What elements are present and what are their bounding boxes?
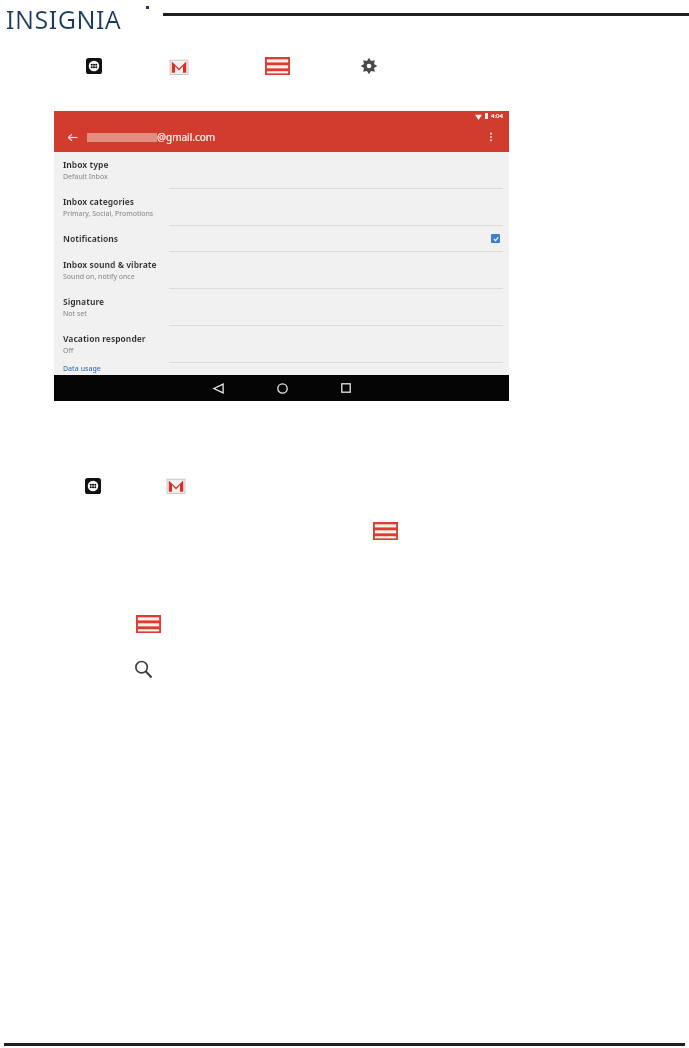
- staticText: Notifications: [63, 233, 119, 245]
- button[interactable]: Back: [201, 375, 235, 401]
- staticText: Not set: [63, 309, 87, 319]
- staticText: INSIGNIA: [6, 2, 122, 36]
- staticText: Inbox sound & vibrate: [63, 259, 157, 271]
- button[interactable]: Gmail: [167, 477, 185, 495]
- button[interactable]: Menu: [373, 522, 398, 540]
- button[interactable]: More options: [483, 129, 499, 145]
- button[interactable]: Gmail: [170, 58, 188, 76]
- staticText: 4:04: [491, 112, 503, 120]
- button[interactable]: Home: [265, 375, 299, 401]
- button[interactable]: Notifications: [54, 226, 509, 251]
- staticText: Data usage: [63, 364, 101, 374]
- staticText: Inbox categories: [63, 196, 135, 208]
- staticText: Off: [63, 346, 74, 356]
- button[interactable]: Back: [64, 129, 80, 145]
- button[interactable]: Menu: [265, 57, 290, 75]
- button[interactable]: Inbox categories: [54, 189, 509, 225]
- staticText: Sound on, notify once: [63, 272, 135, 282]
- staticText: Vacation responder: [63, 333, 146, 345]
- staticText: Default Inbox: [63, 172, 108, 182]
- button[interactable]: Settings: [360, 57, 378, 75]
- button[interactable]: Menu: [136, 615, 161, 633]
- button[interactable]: Signature: [54, 289, 509, 325]
- button[interactable]: Vacation responder: [54, 326, 509, 362]
- button[interactable]: Data usage: [54, 363, 509, 375]
- staticText: Primary, Social, Promotions: [63, 209, 154, 219]
- staticText: Signature: [63, 296, 105, 308]
- button[interactable]: Inbox sound & vibrate: [54, 252, 509, 288]
- button[interactable]: Apps: [85, 478, 101, 494]
- button[interactable]: Inbox type: [54, 152, 509, 188]
- button[interactable]: Apps: [86, 58, 102, 74]
- staticText: @gmail.com: [157, 130, 216, 144]
- staticText: Inbox type: [63, 159, 109, 171]
- button[interactable]: Search: [134, 660, 153, 679]
- button[interactable]: Recents: [329, 375, 363, 401]
